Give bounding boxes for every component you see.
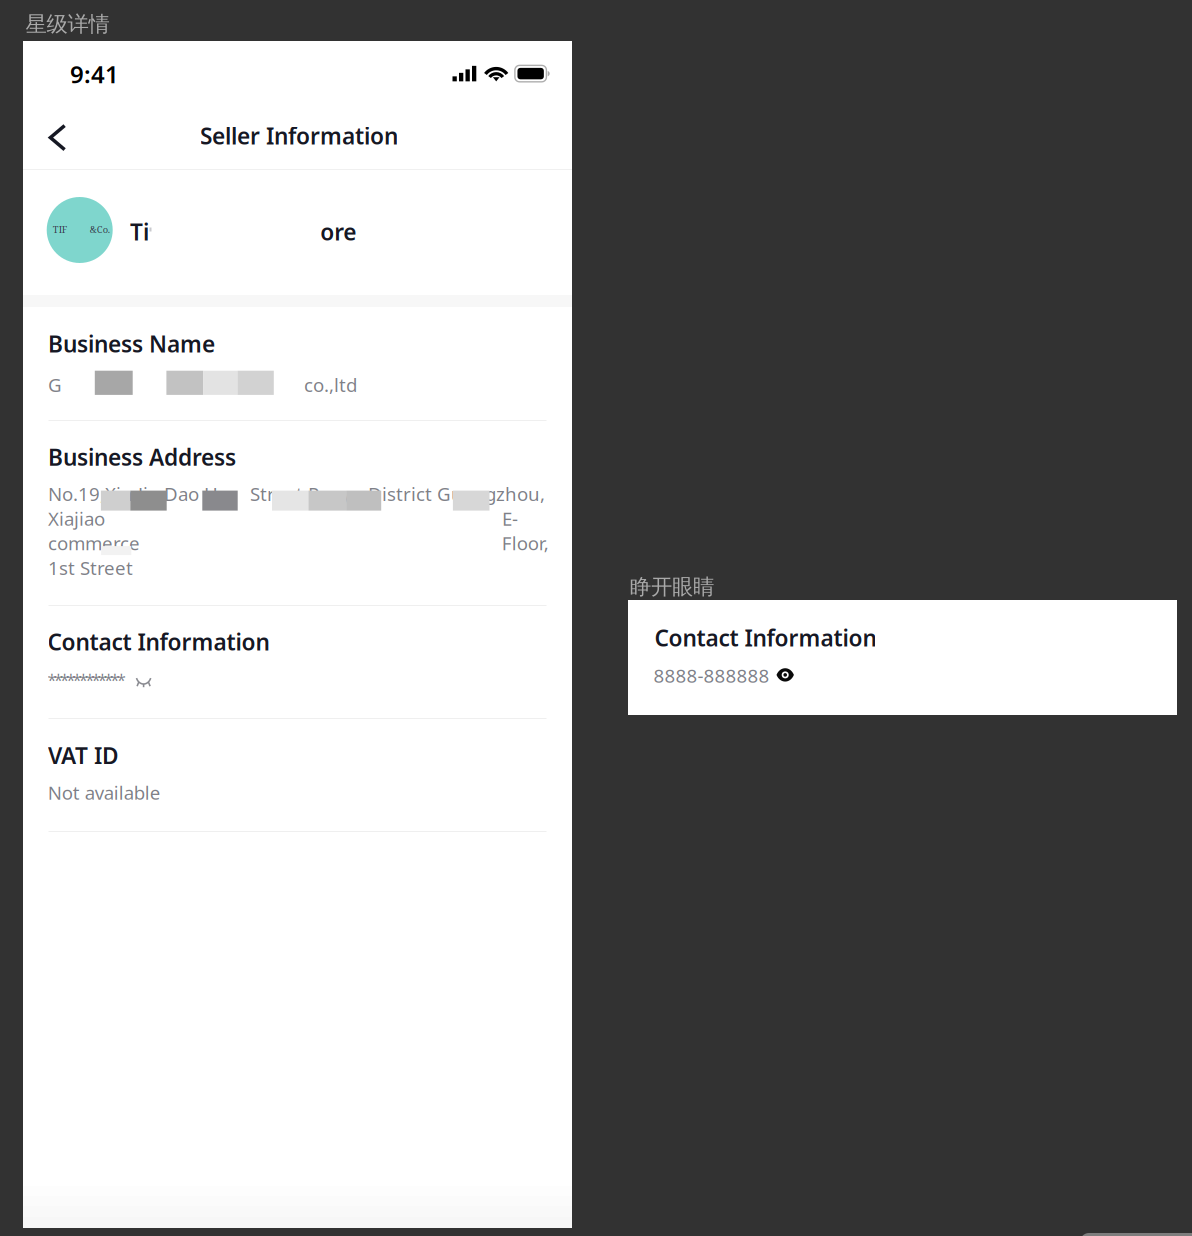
- staticText: Not available: [48, 780, 161, 805]
- button[interactable]: TIF: [23, 170, 572, 296]
- staticText: E-: [502, 506, 518, 531]
- staticText: Xiajiao: [48, 506, 105, 531]
- staticText: G: [48, 372, 62, 397]
- staticText: Ti: [130, 217, 149, 247]
- staticText: Floor,: [502, 531, 549, 555]
- staticText: 8888-888888: [654, 663, 770, 688]
- staticText: &Co.: [90, 223, 110, 236]
- staticText: 1st Street: [48, 555, 133, 580]
- staticText: Contact Information: [48, 627, 270, 657]
- staticText: ************: [48, 669, 126, 690]
- staticText: 睁开眼睛: [630, 574, 714, 600]
- staticText: Business Name: [48, 329, 215, 359]
- staticText: TIF: [53, 223, 68, 236]
- staticText: Seller Information: [200, 121, 398, 151]
- staticText: VAT ID: [48, 740, 119, 770]
- button[interactable]: Back: [31, 112, 83, 164]
- staticText: ore: [320, 217, 356, 247]
- staticText: 星级详情: [25, 11, 109, 37]
- staticText: 9:41: [70, 58, 119, 90]
- button[interactable]: Hide contact number: [654, 663, 796, 689]
- staticText: commerce: [48, 531, 140, 555]
- staticText: Contact Information: [654, 623, 876, 653]
- staticText: No.19,Xin Jie Dao Hu Street Panyu Distri…: [48, 481, 545, 506]
- staticText: Business Address: [48, 442, 236, 472]
- staticText: co.,ltd: [304, 372, 357, 397]
- button[interactable]: Show contact number: [48, 669, 156, 695]
